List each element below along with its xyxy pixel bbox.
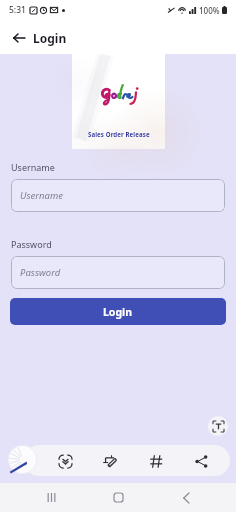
button[interactable]: Hashtag [144, 449, 168, 473]
button[interactable]: Extract text [208, 416, 228, 436]
button[interactable]: Back [169, 483, 203, 512]
staticText: 100% [199, 5, 220, 16]
button[interactable]: Draw [98, 449, 122, 473]
button[interactable]: Back [8, 27, 30, 49]
staticText: Password [11, 238, 52, 250]
staticText: Sales Order Release [88, 130, 150, 138]
staticText: Username [11, 161, 55, 173]
button[interactable]: Pen color [8, 445, 37, 474]
button[interactable]: Login [10, 298, 226, 325]
button[interactable]: Share [189, 449, 213, 473]
button[interactable]: Password [11, 256, 225, 289]
staticText: Password [20, 266, 61, 279]
staticText: Login [33, 30, 67, 46]
button[interactable]: Home [101, 483, 135, 512]
button[interactable]: Recents [34, 483, 68, 512]
button[interactable]: Smart select [53, 449, 77, 473]
staticText: 5:31 [9, 4, 26, 16]
staticText: Username [20, 189, 64, 202]
staticText: Login [103, 305, 133, 319]
button[interactable]: Username [11, 179, 225, 212]
